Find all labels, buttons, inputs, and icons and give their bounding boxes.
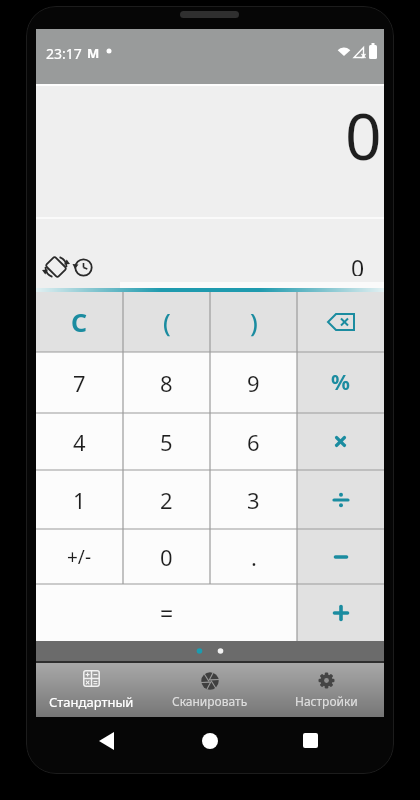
button[interactable] xyxy=(72,253,98,281)
staticText: ) xyxy=(250,305,258,339)
staticText: Настройки xyxy=(295,693,358,709)
button[interactable]: 9 xyxy=(210,352,297,413)
staticText: ( xyxy=(163,305,171,339)
staticText: Стандартный xyxy=(49,693,134,711)
button[interactable] xyxy=(297,584,384,641)
button[interactable]: 5 xyxy=(123,413,210,470)
staticText: 6 xyxy=(247,427,260,457)
button[interactable]: 0 xyxy=(123,529,210,584)
staticText: % xyxy=(331,368,350,397)
button[interactable]: . xyxy=(210,529,297,584)
button[interactable]: 3 xyxy=(210,470,297,529)
button[interactable] xyxy=(297,470,384,529)
button[interactable] xyxy=(88,723,124,759)
staticText: C xyxy=(71,305,88,339)
button[interactable]: Стандартный xyxy=(41,663,141,717)
staticText: = xyxy=(160,597,174,628)
button[interactable] xyxy=(297,292,384,352)
staticText: 5 xyxy=(160,427,173,457)
button[interactable] xyxy=(297,413,384,470)
staticText: . xyxy=(251,542,257,572)
button[interactable]: 6 xyxy=(210,413,297,470)
staticText: 4 xyxy=(73,427,86,457)
staticText: 9 xyxy=(247,368,260,398)
button[interactable]: ( xyxy=(123,292,210,352)
staticText: 23:17 xyxy=(46,44,82,63)
staticText: M xyxy=(87,44,100,62)
button[interactable]: C xyxy=(36,292,123,352)
staticText: 7 xyxy=(73,368,86,398)
button[interactable]: Настройки xyxy=(276,663,376,717)
button[interactable]: 7 xyxy=(36,352,123,413)
button[interactable]: 4 xyxy=(36,413,123,470)
staticText: 3 xyxy=(247,485,260,515)
staticText: 0 xyxy=(160,542,173,572)
button[interactable]: Сканировать xyxy=(160,663,260,717)
button[interactable] xyxy=(292,723,328,759)
staticText: +/- xyxy=(67,544,92,570)
button[interactable]: ) xyxy=(210,292,297,352)
button[interactable]: +/- xyxy=(36,529,123,584)
staticText: 1 xyxy=(73,485,86,515)
button[interactable]: 2 xyxy=(123,470,210,529)
staticText: 2 xyxy=(160,485,173,515)
button[interactable] xyxy=(297,529,384,584)
button[interactable] xyxy=(192,723,228,759)
button[interactable]: = xyxy=(36,584,297,641)
staticText: 8 xyxy=(160,368,173,398)
button[interactable]: % xyxy=(297,352,384,413)
button[interactable]: 8 xyxy=(123,352,210,413)
button[interactable]: 1 xyxy=(36,470,123,529)
staticText: 0 xyxy=(351,252,365,276)
staticText: Сканировать xyxy=(172,693,248,709)
button[interactable] xyxy=(42,253,70,281)
staticText: 0 xyxy=(345,92,382,162)
